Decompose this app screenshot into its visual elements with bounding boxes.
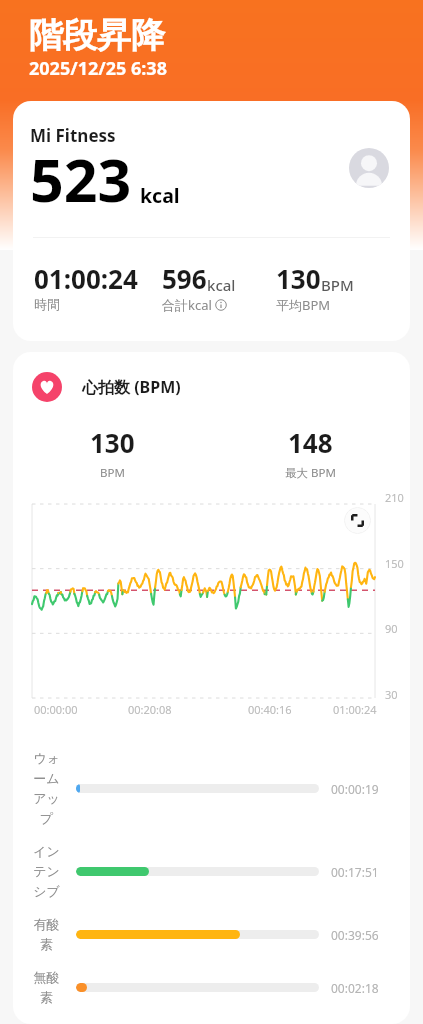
button[interactable]: Profile xyxy=(349,148,389,188)
staticText: kcal xyxy=(207,275,236,295)
staticText: 00:02:18 xyxy=(331,980,379,996)
staticText: 階段昇降 xyxy=(29,14,165,57)
staticText: 合計kcal xyxy=(162,296,212,314)
staticText: 523 xyxy=(30,139,132,219)
staticText: 無酸素 xyxy=(32,969,61,1006)
staticText: 30 xyxy=(385,687,398,702)
staticText: Mi Fitness xyxy=(30,124,116,147)
staticText: BPM xyxy=(100,465,125,481)
staticText: 有酸素 xyxy=(32,916,61,953)
staticText: 596 xyxy=(162,261,207,296)
staticText: 00:20:08 xyxy=(128,702,172,717)
button[interactable]: Expand chart xyxy=(344,507,371,534)
staticText: 148 xyxy=(288,425,333,460)
staticText: kcal xyxy=(140,182,180,209)
staticText: 心拍数 (BPM) xyxy=(82,376,181,398)
staticText: 00:17:51 xyxy=(331,864,379,880)
staticText: 平均BPM xyxy=(276,296,331,314)
staticText: 最大 BPM xyxy=(285,465,336,481)
staticText: 00:39:56 xyxy=(331,927,379,943)
staticText: 210 xyxy=(385,490,404,505)
staticText: 150 xyxy=(385,556,404,571)
staticText: 00:00:00 xyxy=(34,702,78,717)
staticText: 00:00:19 xyxy=(331,781,379,797)
staticText: インテンシブ xyxy=(32,843,61,900)
staticText: 時間 xyxy=(34,296,60,312)
staticText: 130 xyxy=(276,261,321,296)
staticText: 00:40:16 xyxy=(248,702,292,717)
staticText: 01:00:24 xyxy=(333,702,377,717)
staticText: 2025/12/25 6:38 xyxy=(29,56,167,81)
staticText: 90 xyxy=(385,621,398,636)
staticText: BPM xyxy=(321,275,354,295)
staticText: 01:00:24 xyxy=(34,261,138,296)
staticText: 130 xyxy=(90,425,135,460)
staticText: ウォームアップ xyxy=(32,750,61,827)
